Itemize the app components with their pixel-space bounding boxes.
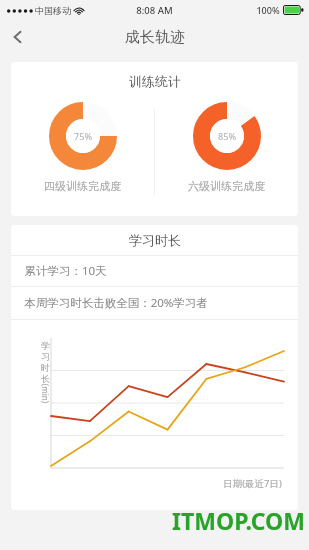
staticText: 中国移动 — [35, 5, 71, 16]
staticText: 85% — [218, 130, 236, 142]
staticText: 100% — [256, 4, 280, 16]
staticText: 75% — [74, 130, 92, 142]
staticText: 时 — [41, 362, 50, 373]
button[interactable]: Back — [0, 20, 36, 54]
staticText: 习 — [41, 351, 50, 362]
staticText: 长 — [41, 373, 50, 384]
staticText: 学 — [41, 340, 50, 351]
staticText: 六级训练完成度 — [188, 179, 265, 193]
staticText: 训练统计 — [129, 73, 181, 89]
staticText: 本周学习时长击败全国：20%学习者 — [24, 295, 208, 311]
staticText: 累计学习：10天 — [24, 263, 107, 279]
staticText: 学习时长 — [129, 232, 181, 248]
staticText: 成长轨迹 — [125, 28, 185, 47]
staticText: 四级训练完成度 — [44, 179, 121, 193]
button[interactable]: 累计学习：10天 — [11, 256, 298, 286]
staticText: (min) — [39, 383, 50, 403]
button[interactable]: 本周学习时长击败全国：20%学习者 — [11, 287, 298, 319]
staticText: ITMOP.COM — [172, 505, 305, 536]
staticText: 日期(最近7日) — [223, 477, 282, 490]
staticText: 8:08 AM — [136, 4, 173, 17]
